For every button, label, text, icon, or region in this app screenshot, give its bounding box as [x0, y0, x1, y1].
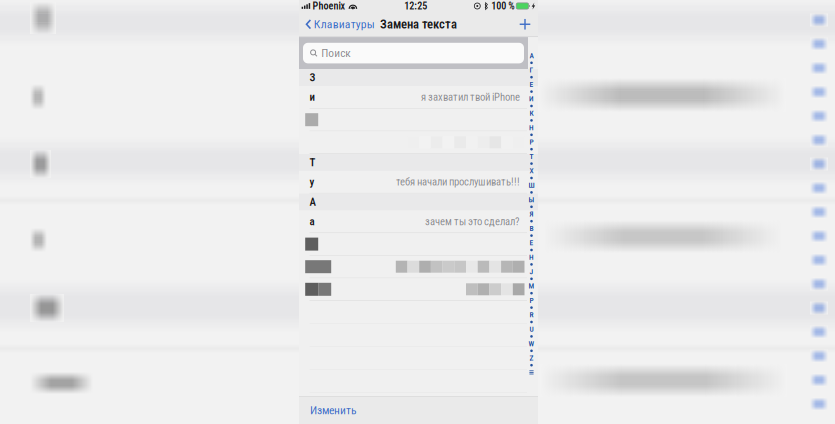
staticText: Ш	[528, 181, 534, 189]
staticText: Н	[529, 123, 534, 132]
staticText: К	[529, 109, 533, 117]
staticText: Ы	[528, 195, 534, 204]
staticText: я захватил твой iPhone	[421, 91, 520, 103]
button[interactable]: Добавить замену текста	[512, 12, 538, 36]
button[interactable]: у	[299, 171, 538, 193]
staticText: J	[529, 267, 533, 276]
staticText: P	[529, 296, 533, 305]
button[interactable]: и	[299, 86, 538, 109]
staticText: M	[528, 282, 534, 290]
staticText: Клавиатуры	[314, 17, 375, 31]
staticText: у	[309, 175, 314, 188]
staticText: тебя начали прослушивать!!!	[396, 176, 520, 188]
button[interactable]: Алфавитный указатель	[526, 52, 537, 376]
staticText: Т	[529, 152, 533, 161]
button[interactable]: а	[299, 210, 538, 233]
staticText: H	[529, 253, 534, 261]
staticText: U	[529, 325, 533, 333]
staticText: B	[529, 224, 533, 233]
staticText: Z	[529, 354, 533, 362]
staticText: Замена текста	[380, 17, 457, 32]
staticText: R	[529, 310, 533, 319]
staticText: И	[529, 94, 534, 103]
staticText: А	[529, 51, 533, 60]
button[interactable]: Изменить	[299, 397, 365, 424]
staticText: Т	[309, 156, 315, 169]
staticText: W	[528, 339, 534, 348]
staticText: А	[309, 196, 315, 208]
staticText: 12:25	[404, 0, 427, 12]
staticText: Х	[529, 166, 533, 175]
staticText: зачем ты это сделал?	[425, 215, 520, 228]
staticText: и	[309, 91, 314, 103]
button[interactable]: Клавиатуры	[299, 12, 379, 36]
staticText: а	[309, 215, 314, 228]
staticText: 100 %	[491, 0, 514, 12]
staticText: Изменить	[310, 403, 357, 417]
staticText: Р	[529, 138, 533, 146]
staticText: Е	[529, 80, 533, 89]
button[interactable]: Поиск	[303, 43, 524, 63]
staticText: Г	[529, 66, 533, 74]
staticText: E	[529, 238, 533, 247]
staticText: Phoenix	[313, 0, 346, 12]
staticText: З	[309, 71, 315, 84]
staticText: Я	[529, 210, 533, 218]
staticText: Поиск	[321, 46, 351, 60]
